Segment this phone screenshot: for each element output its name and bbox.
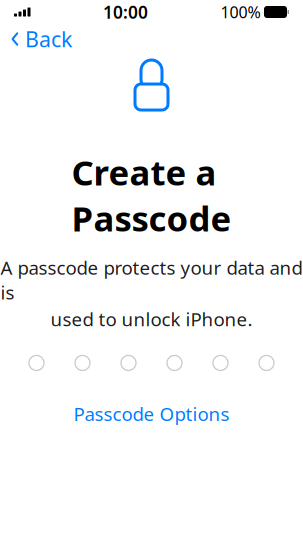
staticText: Passcode Options [73, 401, 229, 426]
staticText: Back [25, 25, 72, 53]
staticText: 100% [220, 1, 260, 23]
staticText: Create a Passcode [71, 149, 231, 241]
staticText: used to unlock iPhone. [50, 307, 252, 331]
button[interactable]: Back [0, 19, 84, 59]
staticText: 10:00 [103, 0, 148, 23]
staticText: A passcode protects your data and is [0, 255, 302, 305]
button[interactable]: Passcode Options [63, 397, 239, 430]
